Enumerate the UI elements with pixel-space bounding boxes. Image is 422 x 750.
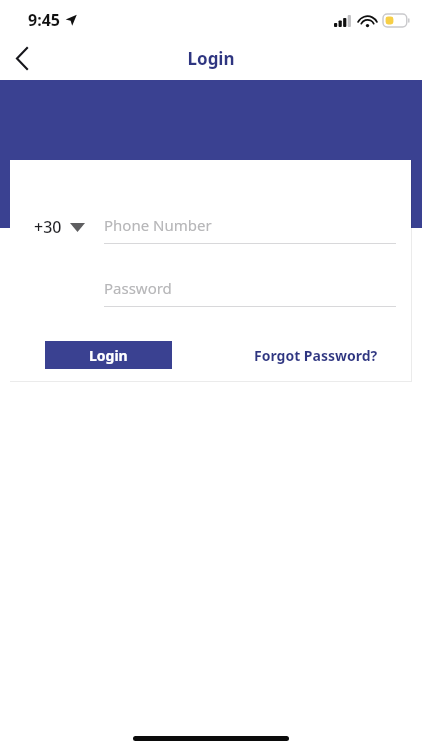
staticText: Login — [89, 346, 128, 365]
staticText: Login — [187, 47, 235, 70]
button[interactable]: Password — [104, 273, 396, 307]
staticText: +30 — [34, 216, 62, 238]
staticText: 9:45 — [28, 9, 60, 31]
button[interactable]: Phone Number — [104, 210, 396, 244]
staticText: Password — [104, 278, 172, 298]
button[interactable]: Login — [45, 341, 172, 369]
staticText: Phone Number — [104, 215, 212, 235]
staticText: Forgot Password? — [254, 346, 378, 365]
button[interactable]: Back — [0, 36, 44, 80]
button[interactable]: +30 — [34, 210, 104, 244]
button[interactable]: Forgot Password? — [254, 341, 378, 369]
